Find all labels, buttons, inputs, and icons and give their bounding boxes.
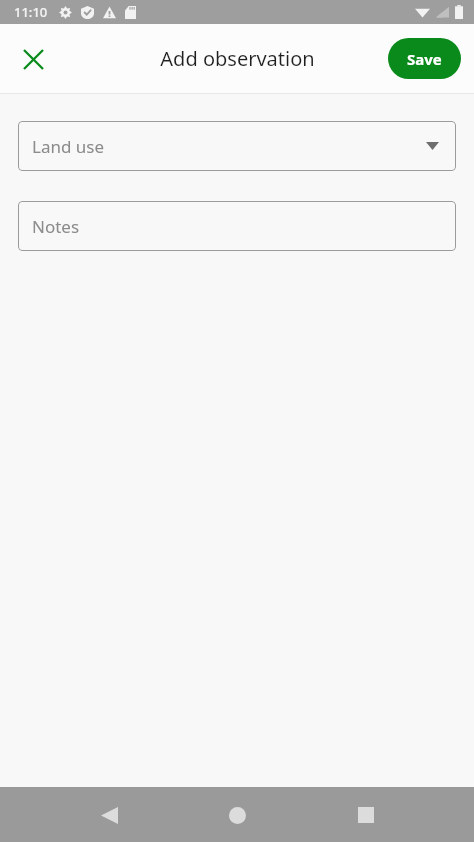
staticText: Add observation	[160, 45, 315, 72]
button[interactable]: Land use	[18, 121, 456, 171]
staticText: Notes	[32, 215, 80, 238]
button[interactable]: Home	[213, 791, 261, 839]
button[interactable]: Notes	[18, 201, 456, 251]
button[interactable]: Recents	[342, 791, 390, 839]
button[interactable]: Back	[85, 791, 133, 839]
staticText: Land use	[32, 135, 105, 158]
staticText: 11:10	[14, 3, 48, 21]
button[interactable]: Save	[388, 38, 461, 79]
staticText: Save	[407, 49, 442, 69]
button[interactable]: Close	[9, 35, 57, 83]
